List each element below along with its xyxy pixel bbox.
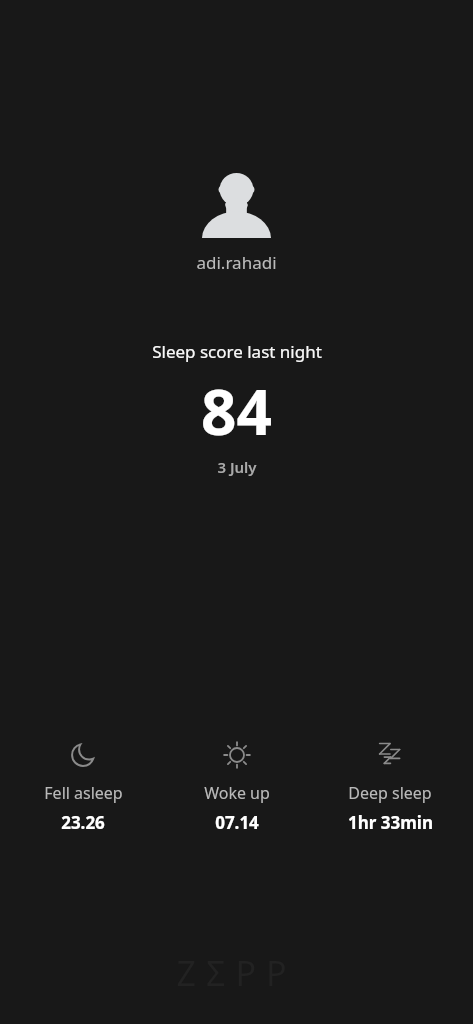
staticText: 3 July <box>217 457 257 477</box>
button[interactable]: Woke up <box>167 736 307 838</box>
staticText: Woke up <box>204 782 270 804</box>
staticText: 1hr 33min <box>348 811 433 834</box>
staticText: Deep sleep <box>348 782 432 804</box>
staticText: adi.rahadi <box>196 251 277 274</box>
staticText: Sleep score last night <box>152 340 322 363</box>
staticText: 84 <box>201 369 272 453</box>
button[interactable]: Profile photo <box>202 172 271 238</box>
staticText: 23.26 <box>61 811 105 834</box>
button[interactable]: Deep sleep <box>320 736 460 838</box>
staticText: 07.14 <box>215 811 259 834</box>
button[interactable]: Fell asleep <box>13 736 153 838</box>
staticText: Fell asleep <box>44 782 123 804</box>
